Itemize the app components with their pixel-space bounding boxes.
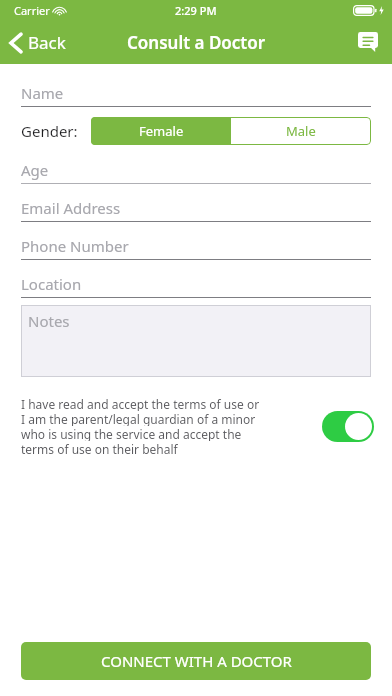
staticText: I have read and accept the terms of use … (21, 396, 260, 411)
button[interactable]: Email Address (0, 195, 392, 222)
button[interactable]: Notes (21, 305, 371, 377)
button[interactable]: Accept terms of use (322, 411, 374, 442)
button[interactable]: Location (0, 271, 392, 298)
button[interactable]: Name (0, 80, 392, 107)
staticText: I am the parent/legal guardian of a mino… (21, 411, 256, 426)
staticText: Email Address (21, 198, 121, 218)
staticText: Carrier (14, 3, 50, 18)
staticText: Female (139, 122, 184, 140)
staticText: Gender: (21, 121, 78, 141)
button[interactable]: Back (0, 25, 78, 60)
staticText: Phone Number (21, 236, 129, 256)
button[interactable]: Phone Number (0, 233, 392, 260)
staticText: Name (21, 83, 64, 103)
button[interactable]: CONNECT WITH A DOCTOR (21, 642, 371, 680)
button[interactable]: Female (91, 117, 231, 145)
staticText: who is using the service and accept the (21, 426, 242, 441)
staticText: Notes (28, 311, 70, 331)
button[interactable]: Age (0, 157, 392, 184)
button[interactable]: Male (231, 117, 371, 145)
staticText: Age (21, 160, 49, 180)
button[interactable]: Messages (344, 22, 392, 62)
staticText: 2:29 PM (175, 3, 217, 18)
staticText: Male (286, 122, 316, 140)
staticText: Location (21, 274, 82, 294)
staticText: terms of use on their behalf (21, 441, 178, 456)
staticText: Back (28, 31, 66, 54)
staticText: Consult a Doctor (127, 31, 266, 54)
staticText: CONNECT WITH A DOCTOR (101, 651, 292, 671)
